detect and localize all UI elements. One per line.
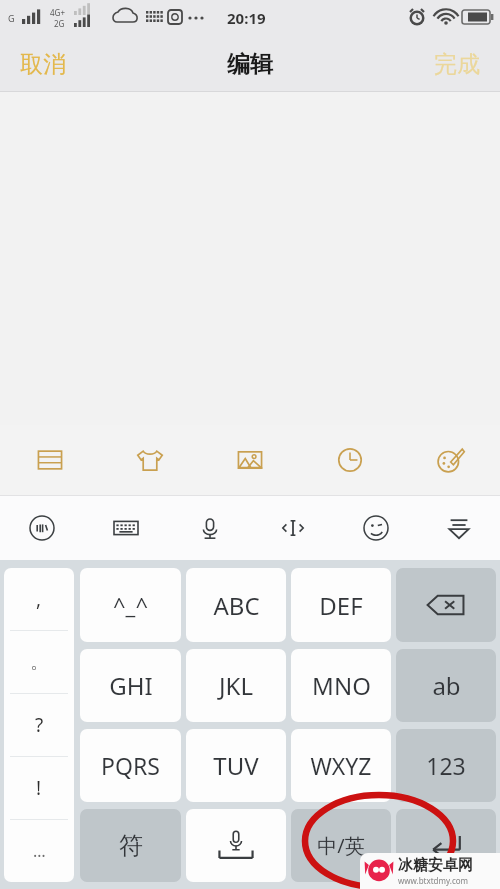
button[interactable]: Space	[186, 809, 286, 882]
button[interactable]: 完成	[414, 36, 500, 92]
staticText: 编辑	[227, 50, 273, 79]
staticText: 20:19	[227, 8, 266, 28]
button[interactable]: Emoji	[334, 496, 417, 560]
button[interactable]: 。	[4, 631, 74, 693]
button[interactable]: TUV	[186, 729, 286, 802]
button[interactable]: ab	[396, 649, 496, 722]
button[interactable]: PQRS	[80, 729, 181, 802]
button[interactable]: 取消	[0, 36, 86, 92]
staticText: 4G+	[50, 7, 65, 18]
button[interactable]: Delete	[396, 568, 496, 642]
staticText: 123	[426, 750, 466, 781]
button[interactable]: Hide keyboard	[417, 496, 500, 560]
staticText: ab	[432, 669, 461, 702]
button[interactable]: ABC	[186, 568, 286, 642]
staticText: 符	[119, 831, 143, 861]
button[interactable]: Clock	[300, 425, 400, 495]
button[interactable]: Input method	[0, 496, 84, 560]
button[interactable]: Palette	[400, 425, 500, 495]
button[interactable]: Enter	[396, 809, 496, 882]
staticText: 。	[30, 650, 49, 674]
staticText: 冰糖安卓网	[398, 856, 473, 875]
staticText: !	[36, 775, 42, 801]
button[interactable]: JKL	[186, 649, 286, 722]
button[interactable]: 符	[80, 809, 181, 882]
button[interactable]: Cursor move	[251, 496, 334, 560]
staticText: …	[33, 840, 46, 862]
button[interactable]: 123	[396, 729, 496, 802]
staticText: 完成	[434, 50, 480, 79]
staticText: G	[8, 12, 15, 24]
staticText: MNO	[312, 669, 371, 702]
staticText: WXYZ	[310, 750, 372, 781]
button[interactable]: DEF	[291, 568, 391, 642]
staticText: ^_^	[113, 590, 148, 620]
staticText: 中/英	[317, 832, 365, 859]
staticText: GHI	[109, 669, 153, 702]
staticText: ?	[35, 712, 44, 738]
button[interactable]: Image	[200, 425, 300, 495]
button[interactable]: !	[4, 757, 74, 819]
button[interactable]: Text	[0, 425, 100, 495]
button[interactable]: 中/英	[291, 809, 391, 882]
staticText: JKL	[219, 669, 253, 702]
button[interactable]: WXYZ	[291, 729, 391, 802]
button[interactable]: ,	[4, 568, 74, 630]
button[interactable]: Keyboard layout	[84, 496, 168, 560]
button[interactable]: GHI	[80, 649, 181, 722]
staticText: 取消	[20, 50, 66, 79]
staticText: ABC	[213, 589, 260, 622]
staticText: PQRS	[101, 750, 160, 781]
button[interactable]: Voice input	[168, 496, 251, 560]
button[interactable]: ^_^	[80, 568, 181, 642]
staticText: www.btxtdmy.com	[398, 875, 469, 886]
staticText: 2G	[54, 18, 65, 29]
button[interactable]: MNO	[291, 649, 391, 722]
staticText: DEF	[319, 589, 363, 622]
staticText: TUV	[213, 749, 259, 782]
button[interactable]: ?	[4, 694, 74, 756]
staticText: ,	[36, 586, 42, 612]
button[interactable]: Shirt	[100, 425, 200, 495]
button[interactable]: …	[4, 820, 74, 882]
